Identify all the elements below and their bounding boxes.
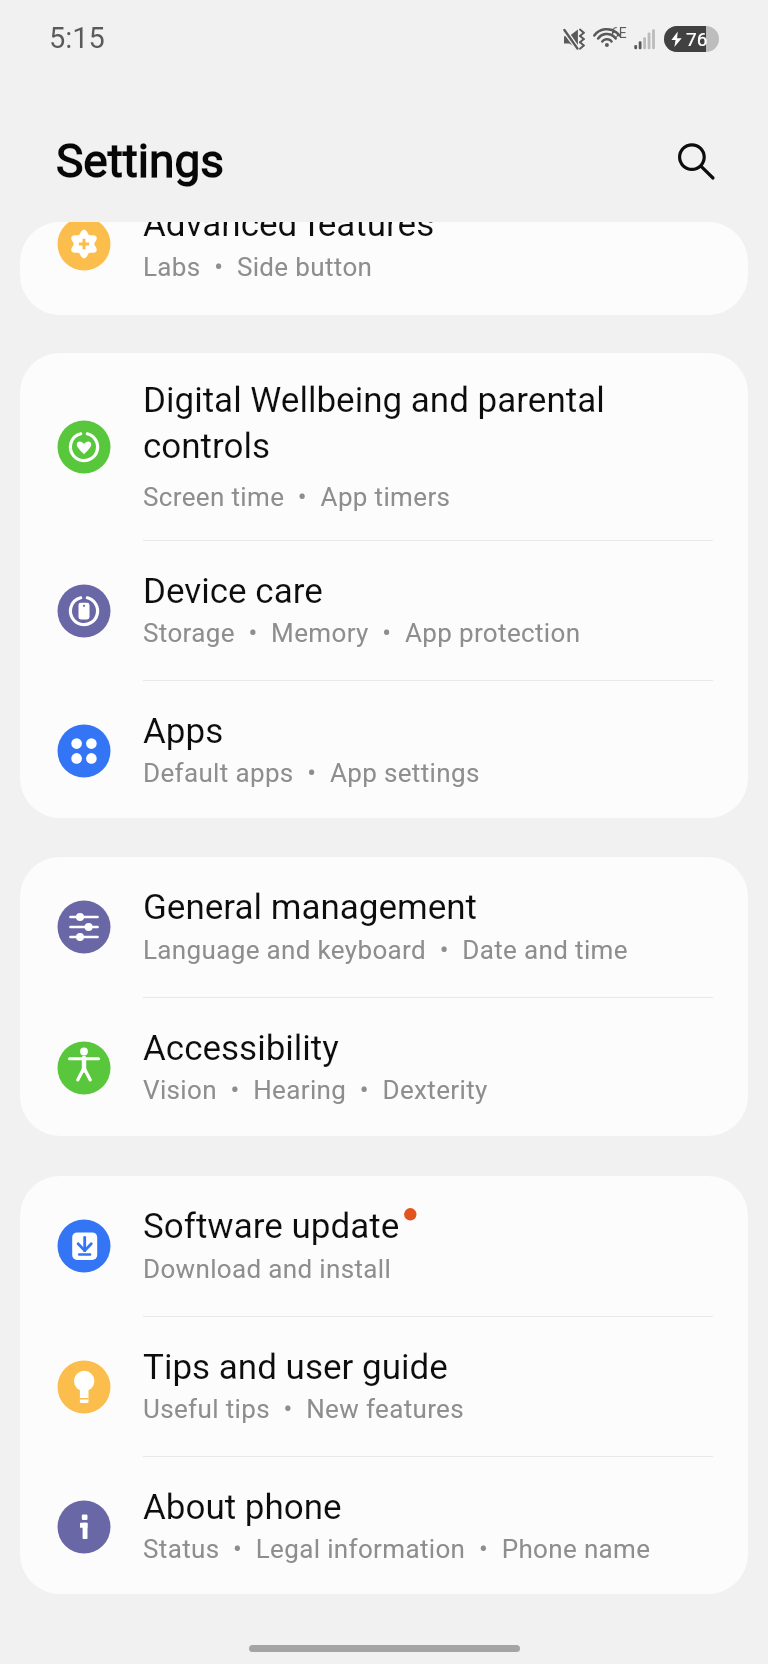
staticText: Language and keyboard • Date and time — [143, 935, 628, 965]
button[interactable]: Advanced features — [20, 222, 748, 315]
staticText: Accessibility — [143, 1028, 339, 1069]
staticText: Advanced features — [143, 222, 435, 245]
staticText: Download and install — [143, 1254, 392, 1284]
button[interactable]: Accessibility — [20, 998, 748, 1136]
staticText: Software update — [143, 1206, 400, 1247]
button[interactable]: Device care — [20, 541, 748, 680]
staticText: Device care — [143, 571, 323, 612]
staticText: Digital Wellbeing and parental controls — [143, 380, 663, 467]
button[interactable]: Software update — [20, 1176, 748, 1316]
staticText: Settings — [56, 134, 224, 188]
staticText: Tips and user guide — [143, 1347, 448, 1388]
staticText: 6E — [611, 25, 627, 41]
button[interactable]: Digital Wellbeing and parental controls — [20, 353, 748, 540]
staticText: Default apps • App settings — [143, 758, 480, 788]
staticText: 76 — [686, 28, 708, 50]
staticText: Storage • Memory • App protection — [143, 618, 581, 648]
button[interactable]: Tips and user guide — [20, 1317, 748, 1456]
staticText: Screen time • App timers — [143, 482, 451, 512]
staticText: Useful tips • New features — [143, 1394, 465, 1424]
staticText: Apps — [143, 711, 224, 752]
staticText: General management — [143, 887, 478, 928]
staticText: Status • Legal information • Phone name — [143, 1534, 651, 1564]
staticText: 5:15 — [49, 21, 105, 55]
button[interactable]: Search — [652, 117, 732, 197]
button[interactable]: About phone — [20, 1457, 748, 1594]
button[interactable]: General management — [20, 857, 748, 997]
staticText: Vision • Hearing • Dexterity — [143, 1075, 488, 1105]
staticText: About phone — [143, 1487, 342, 1528]
staticText: Labs • Side button — [143, 252, 373, 282]
button[interactable]: Apps — [20, 681, 748, 818]
